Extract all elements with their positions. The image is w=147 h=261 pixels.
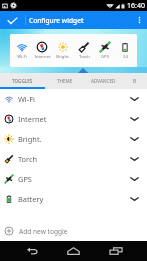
- button[interactable]: Internet: [32, 41, 52, 60]
- staticText: Battery: [18, 194, 44, 204]
- staticText: Internet: [18, 114, 47, 124]
- button[interactable]: Recent apps: [94, 241, 137, 261]
- staticText: Wi-Fi: [18, 94, 35, 104]
- staticText: Torch: [18, 154, 38, 164]
- staticText: 24: [123, 54, 128, 60]
- button[interactable]: ADVANCED: [85, 73, 122, 89]
- button[interactable]: Wi-Fi: [12, 41, 32, 60]
- button[interactable]: Wi-Fi: [10, 34, 137, 67]
- staticText: Wi-Fi: [17, 54, 27, 60]
- staticText: Configure widget: [29, 16, 84, 25]
- button[interactable]: GPS: [95, 41, 115, 60]
- button[interactable]: Internet: [0, 109, 147, 129]
- button[interactable]: Bright.: [0, 129, 147, 149]
- button[interactable]: Home: [52, 241, 95, 261]
- button[interactable]: Torch: [74, 41, 94, 60]
- staticText: TOGGLES: [12, 78, 33, 84]
- staticText: Bright.: [18, 134, 42, 144]
- staticText: GPS: [101, 54, 109, 60]
- staticText: Add new toggle: [19, 227, 68, 236]
- button[interactable]: Torch: [0, 149, 147, 169]
- button[interactable]: Bright.: [53, 41, 73, 60]
- button[interactable]: B: [122, 73, 147, 89]
- button[interactable]: Battery: [0, 189, 147, 209]
- button[interactable]: GPS: [0, 169, 147, 189]
- button[interactable]: TOGGLES: [0, 73, 45, 89]
- staticText: ADVANCED: [91, 78, 116, 84]
- button[interactable]: Done: [0, 11, 25, 29]
- button[interactable]: 24: [115, 41, 135, 60]
- staticText: B: [133, 78, 137, 84]
- staticText: Internet: [34, 54, 51, 60]
- button[interactable]: THEME: [45, 73, 85, 89]
- staticText: 16:40: [127, 1, 145, 11]
- staticText: Bright.: [56, 54, 70, 60]
- staticText: Torch: [79, 54, 90, 60]
- button[interactable]: Back: [10, 241, 53, 261]
- button[interactable]: More options: [131, 11, 147, 29]
- staticText: THEME: [57, 78, 73, 84]
- button[interactable]: Add new toggle: [0, 222, 147, 240]
- button[interactable]: Wi-Fi: [0, 89, 147, 109]
- staticText: GPS: [18, 174, 32, 184]
